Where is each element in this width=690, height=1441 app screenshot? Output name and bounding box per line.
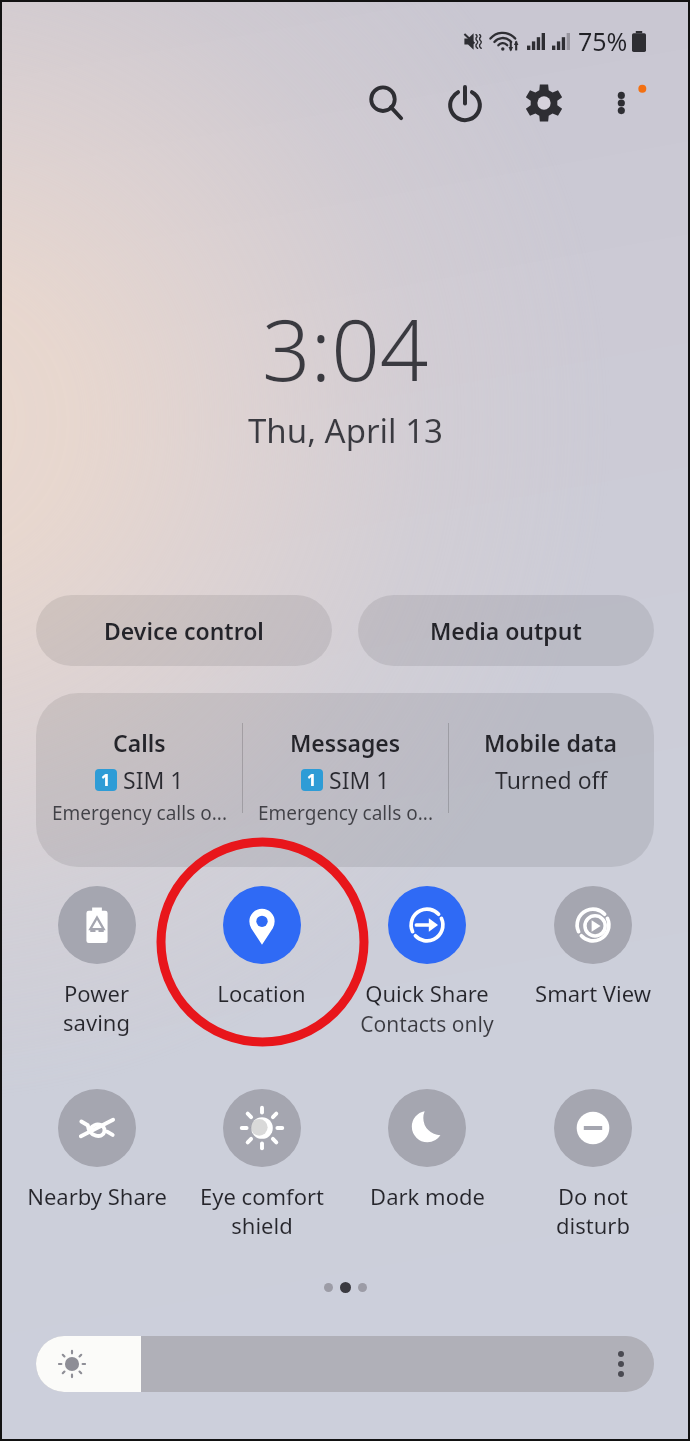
button[interactable]: Dark mode (344, 1089, 510, 1211)
staticText: Emergency calls o... (258, 800, 433, 826)
staticText: Dark mode (370, 1181, 485, 1211)
staticText: Eye comfort shield (200, 1181, 324, 1240)
staticText: Quick Share (365, 978, 489, 1008)
staticText: Smart View (535, 978, 651, 1008)
staticText: Contacts only (360, 1010, 494, 1039)
staticText: Turned off (495, 764, 608, 795)
staticText: Do not disturb (556, 1181, 630, 1240)
staticText: Thu, April 13 (248, 408, 443, 453)
button[interactable]: More options (589, 69, 657, 137)
staticText: Power saving (63, 978, 130, 1037)
button[interactable]: Media output (358, 595, 654, 666)
staticText: Location (217, 978, 306, 1008)
button[interactable]: Eye comfort shield (179, 1089, 344, 1240)
button[interactable]: Device control (36, 595, 332, 666)
button[interactable]: Location (179, 886, 344, 1008)
staticText: 3:04 (262, 290, 429, 406)
button[interactable]: Settings (510, 69, 578, 137)
staticText: Mobile data (484, 727, 618, 758)
staticText: SIM 1 (123, 764, 184, 795)
staticText: Emergency calls o... (52, 800, 227, 826)
button[interactable]: Power off (431, 69, 499, 137)
staticText: Calls (113, 727, 166, 758)
staticText: 1 (101, 769, 111, 791)
button[interactable]: Calls (36, 693, 242, 867)
staticText: Device control (104, 615, 264, 646)
button[interactable]: Quick Share (344, 886, 510, 1039)
staticText: 75% (578, 24, 628, 58)
staticText: 1 (307, 769, 317, 791)
button[interactable]: Messages (242, 693, 448, 867)
button[interactable]: Do not disturb (510, 1089, 676, 1240)
staticText: Nearby Share (27, 1181, 167, 1211)
staticText: Messages (290, 727, 401, 758)
button[interactable]: Nearby Share (14, 1089, 179, 1211)
staticText: Media output (430, 615, 582, 646)
staticText: SIM 1 (329, 764, 390, 795)
button[interactable]: Smart View (510, 886, 676, 1008)
button[interactable]: Power saving (14, 886, 179, 1037)
button[interactable]: Brightness (36, 1336, 654, 1392)
button[interactable]: Search (352, 69, 420, 137)
button[interactable]: Mobile data (448, 693, 654, 867)
